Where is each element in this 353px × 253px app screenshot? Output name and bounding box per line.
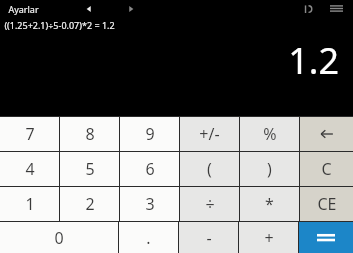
button[interactable]: CE xyxy=(300,187,353,221)
staticText: 1.2 xyxy=(288,36,339,85)
button[interactable]: 5 xyxy=(60,152,119,186)
button[interactable]: Equals xyxy=(299,222,353,253)
staticText: * xyxy=(265,193,274,215)
staticText: 7 xyxy=(25,123,35,145)
button[interactable]: 6 xyxy=(120,152,179,186)
staticText: +/- xyxy=(199,123,220,145)
staticText: Ayarlar xyxy=(8,3,39,15)
button[interactable]: Undo xyxy=(300,1,316,17)
staticText: 3 xyxy=(145,193,155,215)
staticText: ÷ xyxy=(205,193,215,215)
staticText: 9 xyxy=(145,123,155,145)
staticText: 2 xyxy=(85,193,95,215)
staticText: 4 xyxy=(25,158,35,180)
button[interactable]: . xyxy=(119,222,178,253)
staticText: + xyxy=(264,227,274,249)
button[interactable]: Menu xyxy=(327,0,345,17)
staticText: CE xyxy=(317,193,337,215)
button[interactable]: Next xyxy=(124,2,138,16)
staticText: ( xyxy=(207,158,212,180)
button[interactable]: C xyxy=(300,152,353,186)
button[interactable]: 8 xyxy=(60,117,119,151)
staticText: . xyxy=(146,227,151,249)
staticText: ((1.25+2.1)÷5-0.07)*2 = 1.2 xyxy=(4,19,115,31)
button[interactable]: 7 xyxy=(0,117,59,151)
staticText: % xyxy=(263,123,277,145)
staticText: ) xyxy=(267,158,272,180)
button[interactable]: 0 xyxy=(0,222,118,253)
button[interactable]: ÷ xyxy=(180,187,239,221)
button[interactable]: - xyxy=(179,222,238,253)
staticText: 5 xyxy=(85,158,95,180)
staticText: 0 xyxy=(54,227,64,249)
staticText: 6 xyxy=(145,158,155,180)
button[interactable]: ( xyxy=(180,152,239,186)
button[interactable]: 3 xyxy=(120,187,179,221)
button[interactable]: 4 xyxy=(0,152,59,186)
button[interactable]: 2 xyxy=(60,187,119,221)
button[interactable]: 9 xyxy=(120,117,179,151)
staticText: 1 xyxy=(25,193,35,215)
staticText: C xyxy=(321,158,332,180)
button[interactable]: % xyxy=(240,117,299,151)
button[interactable]: ) xyxy=(240,152,299,186)
staticText: 8 xyxy=(85,123,95,145)
button[interactable]: +/- xyxy=(180,117,239,151)
button[interactable]: * xyxy=(240,187,299,221)
button[interactable]: Backspace xyxy=(300,117,353,151)
button[interactable]: Ayarlar xyxy=(8,3,39,15)
staticText: - xyxy=(206,227,212,249)
button[interactable]: Previous xyxy=(82,2,96,16)
button[interactable]: 1 xyxy=(0,187,59,221)
button[interactable]: + xyxy=(239,222,298,253)
